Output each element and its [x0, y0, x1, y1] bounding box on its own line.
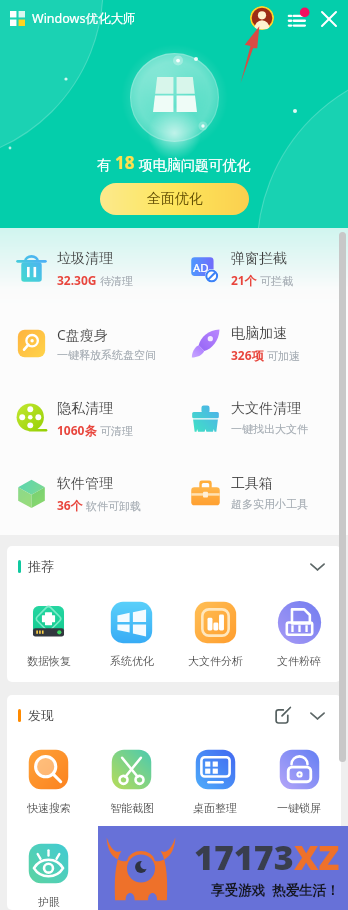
staticText: 可拦截	[260, 274, 293, 288]
staticText: 有	[97, 155, 115, 174]
staticText: 文件粉碎	[277, 654, 321, 668]
button[interactable]: 文件粉碎	[257, 586, 341, 668]
staticText: 可加速	[267, 349, 300, 363]
button[interactable]: 工具箱	[174, 471, 348, 535]
staticText: 数据恢复	[27, 654, 71, 668]
staticText: 推荐	[28, 558, 54, 574]
button[interactable]: 护眼	[7, 815, 90, 909]
button[interactable]: Close	[317, 8, 341, 30]
staticText: 隐私清理	[57, 400, 113, 418]
staticText: 大文件分析	[188, 654, 243, 668]
button[interactable]: 软件管理	[0, 471, 174, 535]
button[interactable]: 大文件清理	[174, 396, 348, 471]
staticText: 一键锁屏	[277, 801, 321, 815]
staticText: 32.30G	[57, 272, 97, 288]
button[interactable]: 全面优化	[100, 183, 249, 215]
staticText: 软件管理	[57, 475, 113, 493]
staticText: 弹窗拦截	[231, 250, 287, 268]
staticText: C盘瘦身	[57, 325, 108, 344]
button[interactable]: Menu	[283, 7, 306, 30]
staticText: 一键找出大文件	[231, 422, 308, 436]
button[interactable]: Expand	[305, 554, 329, 578]
staticText: AD	[193, 260, 209, 276]
button[interactable]: Account	[250, 6, 274, 30]
staticText: 项电脑问题可优化	[135, 155, 251, 174]
button[interactable]: Expand	[305, 703, 329, 727]
staticText: 一键释放系统盘空间	[57, 348, 156, 362]
staticText: 超多实用小工具	[231, 497, 308, 511]
button[interactable]: 垃圾清理	[0, 246, 174, 321]
staticText: XZ	[294, 834, 340, 880]
staticText: 享受游戏 热爱生活！	[211, 881, 340, 899]
staticText: 系统优化	[110, 654, 154, 668]
staticText: Windows优化大师	[32, 10, 136, 27]
staticText: 18	[115, 151, 135, 174]
button[interactable]: Edit	[271, 703, 295, 727]
button[interactable]: 隐私清理	[0, 396, 174, 471]
button[interactable]: 桌面整理	[173, 735, 257, 815]
staticText: 软件可卸载	[86, 499, 141, 513]
staticText: 全面优化	[147, 190, 203, 208]
staticText: 发现	[28, 707, 54, 723]
staticText: 快速搜索	[27, 801, 71, 815]
button[interactable]: 大文件分析	[173, 586, 257, 668]
button[interactable]: 快速搜索	[7, 735, 90, 815]
button[interactable]: 电脑加速	[174, 321, 348, 396]
button[interactable]: 系统优化	[90, 586, 173, 668]
button[interactable]: AD	[174, 246, 348, 321]
staticText: 电脑加速	[231, 325, 287, 343]
button[interactable]: 智能截图	[90, 735, 173, 815]
staticText: 护眼	[38, 895, 60, 909]
staticText: 17173	[194, 834, 294, 880]
staticText: 21个	[231, 272, 257, 288]
staticText: 桌面整理	[193, 801, 237, 815]
staticText: 工具箱	[231, 475, 273, 493]
staticText: 326项	[231, 347, 264, 363]
staticText: 待清理	[100, 274, 133, 288]
staticText: 可清理	[100, 424, 133, 438]
button[interactable]: C盘瘦身	[0, 321, 174, 396]
staticText: 大文件清理	[231, 400, 301, 418]
staticText: 垃圾清理	[57, 250, 113, 268]
button[interactable]: 一键锁屏	[257, 735, 341, 815]
staticText: 1060条	[57, 422, 97, 438]
staticText: 36个	[57, 497, 83, 513]
staticText: 智能截图	[110, 801, 154, 815]
button[interactable]: 数据恢复	[7, 586, 90, 668]
